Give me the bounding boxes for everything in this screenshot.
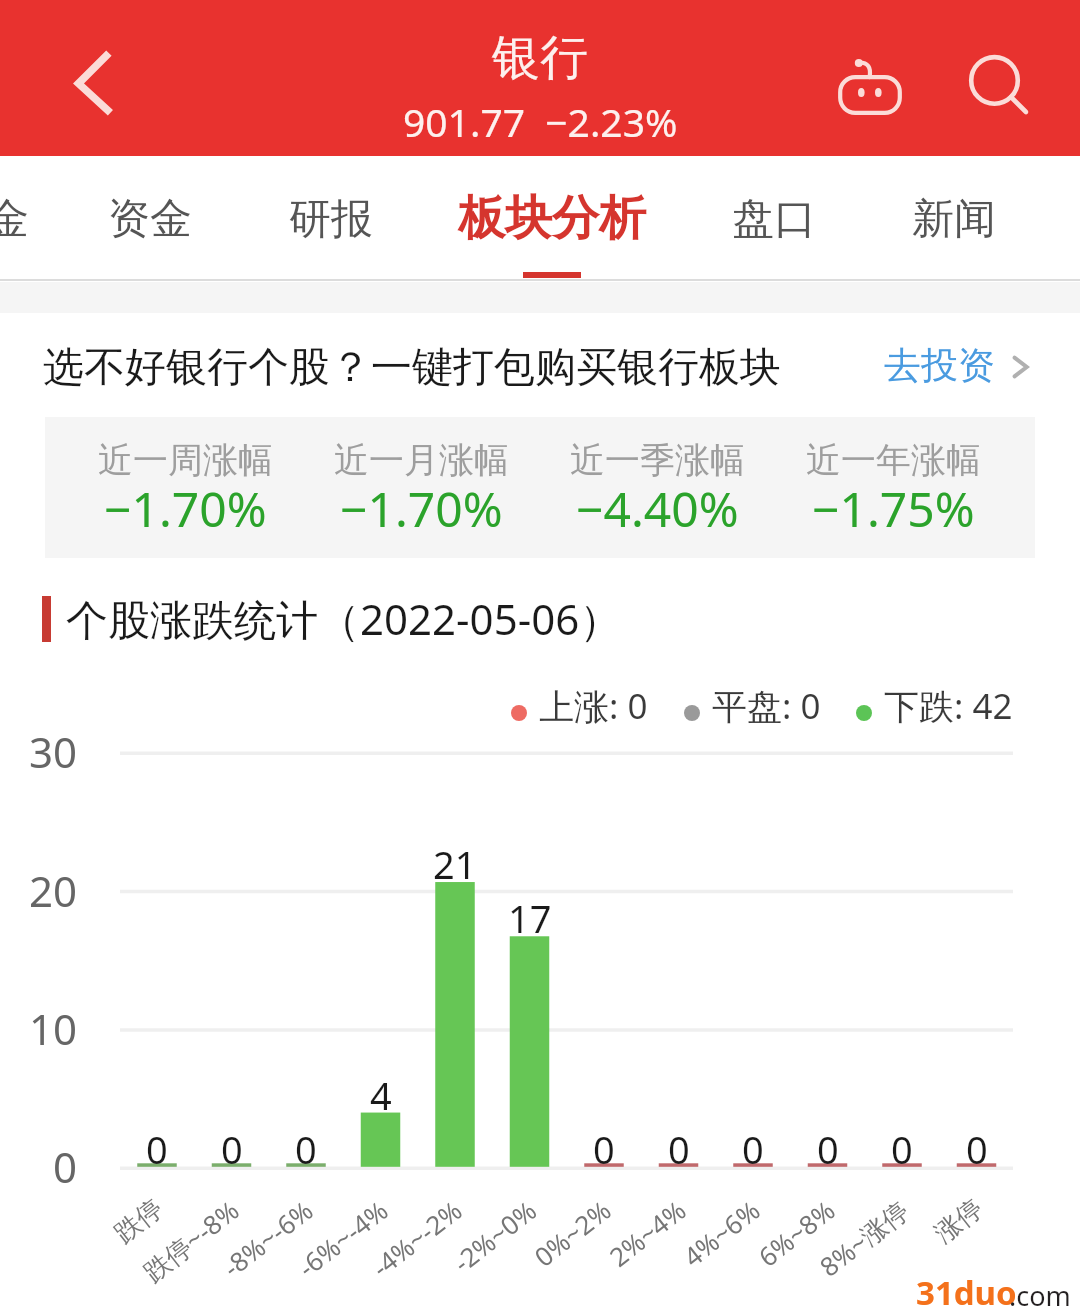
staticText: 31duo (916, 1270, 1017, 1313)
staticText: 0 (295, 1123, 317, 1175)
staticText: −1.70% (104, 476, 267, 541)
staticText: 0 (966, 1123, 988, 1175)
staticText: 跌停~-8% (136, 1192, 246, 1289)
staticText: 跌停 (108, 1192, 169, 1250)
staticText: 0 (891, 1123, 913, 1175)
staticText: 0 (593, 1123, 615, 1175)
staticText: 盘口 (732, 193, 816, 246)
staticText: 个股涨跌统计（2022-05-06） (66, 590, 622, 647)
staticText: 2%~4% (602, 1192, 693, 1274)
button[interactable]: 板块分析 (438, 156, 666, 281)
staticText: -2%~0% (446, 1192, 544, 1279)
staticText: 30 (29, 723, 78, 780)
button[interactable]: 新闻 (892, 156, 1016, 281)
staticText: 0%~2% (527, 1192, 618, 1274)
staticText: 17 (508, 892, 552, 944)
staticText: 近一月涨幅 (334, 438, 509, 482)
staticText: 0 (668, 1123, 690, 1175)
staticText: 下跌: 42 (884, 682, 1013, 730)
staticText: −1.75% (812, 476, 975, 541)
button[interactable]: 选不好银行个股？一键打包购买银行板块 (0, 313, 1080, 425)
staticText: 板块分析 (458, 189, 646, 248)
staticText: 平盘: 0 (712, 682, 821, 730)
staticText: 21 (433, 838, 477, 890)
staticText: 涨停 (928, 1192, 989, 1250)
staticText: 6%~8% (751, 1192, 842, 1274)
staticText: .com (1009, 1277, 1071, 1313)
button[interactable]: 平盘: 0 (684, 682, 821, 730)
staticText: 20 (29, 862, 78, 919)
button[interactable]: Back (60, 45, 140, 125)
staticText: 0 (53, 1138, 78, 1195)
staticText: 去投资 (884, 342, 995, 389)
staticText: 资金 (108, 193, 192, 246)
staticText: 0 (146, 1123, 168, 1175)
button[interactable]: 金 (0, 156, 49, 281)
staticText: 10 (29, 1000, 78, 1057)
staticText: 4 (370, 1069, 392, 1121)
staticText: -4%~-2% (364, 1192, 469, 1284)
button[interactable]: Search (950, 45, 1040, 135)
staticText: 4%~6% (676, 1192, 767, 1274)
staticText: 近一季涨幅 (570, 438, 745, 482)
staticText: 金 (0, 193, 29, 246)
staticText: 近一年涨幅 (806, 438, 981, 482)
button[interactable]: 盘口 (712, 156, 836, 281)
staticText: -6%~-4% (290, 1192, 395, 1284)
staticText: −4.40% (576, 476, 739, 541)
staticText: 上涨: 0 (539, 682, 648, 730)
staticText: 近一周涨幅 (98, 438, 273, 482)
staticText: 研报 (289, 193, 373, 246)
staticText: −1.70% (340, 476, 503, 541)
staticText: 选不好银行个股？一键打包购买银行板块 (43, 342, 781, 394)
staticText: 0 (742, 1123, 764, 1175)
staticText: 银行 (492, 28, 588, 88)
staticText: 新闻 (912, 193, 996, 246)
button[interactable]: 下跌: 42 (856, 682, 1013, 730)
staticText: -8%~-6% (215, 1192, 320, 1284)
button[interactable]: 资金 (88, 156, 212, 281)
button[interactable]: 上涨: 0 (511, 682, 648, 730)
staticText: 0 (817, 1123, 839, 1175)
staticText: 0 (221, 1123, 243, 1175)
staticText: 8%~涨停 (812, 1192, 916, 1284)
staticText: 901.77 −2.23% (403, 95, 678, 148)
button[interactable]: 研报 (269, 156, 393, 281)
button[interactable]: Assistant (835, 45, 915, 125)
